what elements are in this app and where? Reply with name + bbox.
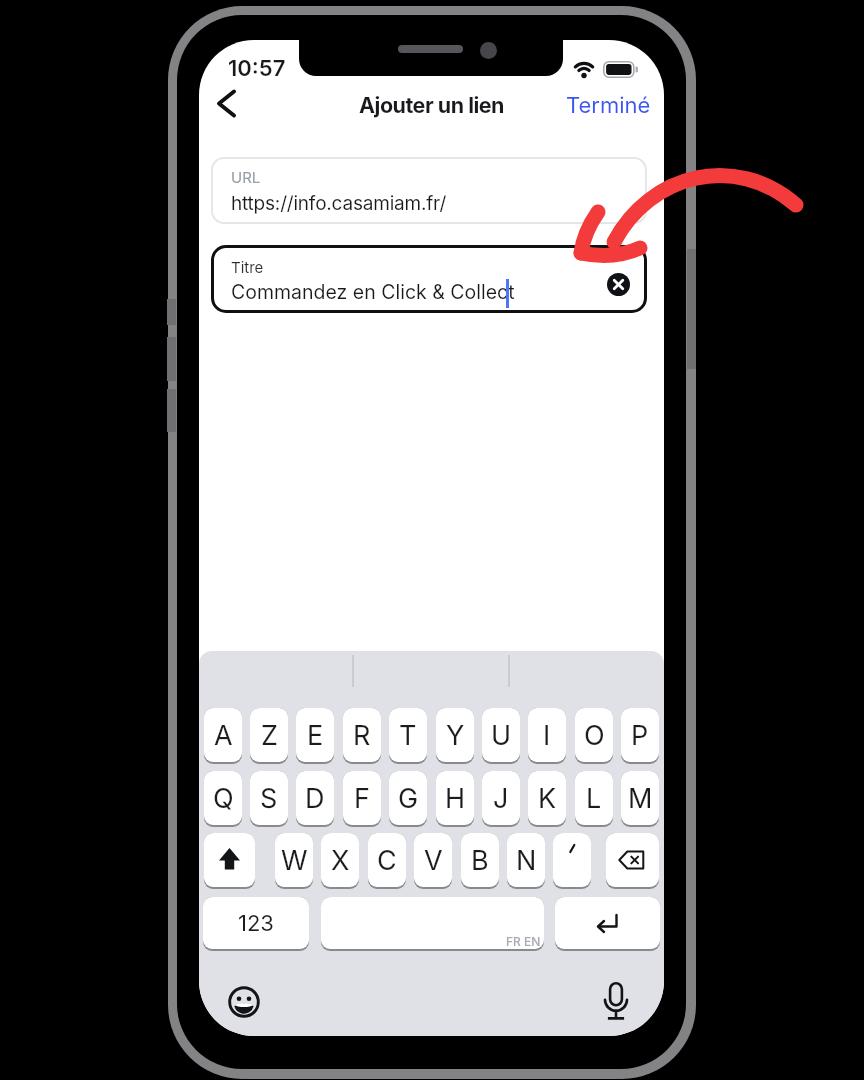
staticText: S xyxy=(260,782,278,815)
staticText: F xyxy=(354,782,370,815)
button[interactable] xyxy=(229,987,259,1017)
button[interactable]: E xyxy=(296,708,334,762)
button[interactable]: U xyxy=(482,708,520,762)
staticText: H xyxy=(445,782,466,815)
button[interactable]: Q xyxy=(204,771,242,825)
button[interactable] xyxy=(553,833,591,887)
staticText: FR EN xyxy=(506,934,541,949)
button[interactable]: K xyxy=(528,771,566,825)
staticText: D xyxy=(305,782,325,815)
button[interactable]: H xyxy=(436,771,474,825)
button[interactable]: P xyxy=(621,708,659,762)
button[interactable] xyxy=(607,273,630,296)
button[interactable]: Z xyxy=(250,708,288,762)
staticText: P xyxy=(631,719,649,752)
button[interactable]: V xyxy=(414,833,452,887)
staticText: 123 xyxy=(238,910,274,937)
button[interactable]: R xyxy=(343,708,381,762)
staticText: I xyxy=(543,719,551,752)
button[interactable]: I xyxy=(528,708,566,762)
button[interactable]: J xyxy=(482,771,520,825)
staticText: K xyxy=(538,782,557,815)
staticText: O xyxy=(584,719,605,752)
staticText: U xyxy=(491,719,512,752)
staticText: Y xyxy=(446,719,465,752)
button[interactable]: A xyxy=(204,708,242,762)
button[interactable]: O xyxy=(575,708,613,762)
staticText: https://info.casamiam.fr/ xyxy=(231,192,447,215)
button[interactable] xyxy=(603,982,629,1022)
staticText: L xyxy=(586,782,602,815)
button[interactable] xyxy=(204,833,255,887)
staticText: E xyxy=(307,719,324,752)
button[interactable]: L xyxy=(575,771,613,825)
staticText: N xyxy=(516,844,537,877)
button[interactable] xyxy=(606,833,659,887)
staticText: 10:57 xyxy=(228,55,286,82)
button[interactable] xyxy=(213,87,241,121)
staticText: G xyxy=(398,782,419,815)
staticText: Titre xyxy=(231,258,264,276)
staticText: Ajouter un lien xyxy=(359,92,504,118)
button[interactable] xyxy=(555,897,660,949)
staticText: Commandez en Click & Collect xyxy=(231,280,515,304)
button[interactable]: Titre xyxy=(211,245,647,313)
button[interactable]: B xyxy=(461,833,499,887)
staticText: C xyxy=(377,844,397,877)
staticText: B xyxy=(471,844,489,877)
button[interactable]: D xyxy=(296,771,334,825)
staticText: M xyxy=(628,782,653,815)
button[interactable]: W xyxy=(275,833,313,887)
button[interactable]: T xyxy=(389,708,427,762)
button[interactable] xyxy=(321,897,544,949)
button[interactable]: N xyxy=(507,833,545,887)
staticText: Q xyxy=(213,782,234,815)
button[interactable]: M xyxy=(621,771,659,825)
staticText: Z xyxy=(261,719,278,752)
staticText: X xyxy=(331,844,350,877)
staticText: J xyxy=(493,782,509,815)
button[interactable]: F xyxy=(343,771,381,825)
button[interactable]: 123 xyxy=(203,897,309,949)
staticText: URL xyxy=(231,168,261,186)
staticText: R xyxy=(353,719,371,752)
button[interactable]: X xyxy=(321,833,359,887)
button[interactable]: URL xyxy=(211,157,647,224)
button[interactable]: G xyxy=(389,771,427,825)
button[interactable]: Terminé xyxy=(566,92,651,119)
staticText: V xyxy=(424,844,443,877)
staticText: W xyxy=(281,844,308,877)
button[interactable]: Y xyxy=(436,708,474,762)
button[interactable]: S xyxy=(250,771,288,825)
staticText: A xyxy=(214,719,233,752)
staticText: T xyxy=(399,719,417,752)
button[interactable]: C xyxy=(368,833,406,887)
